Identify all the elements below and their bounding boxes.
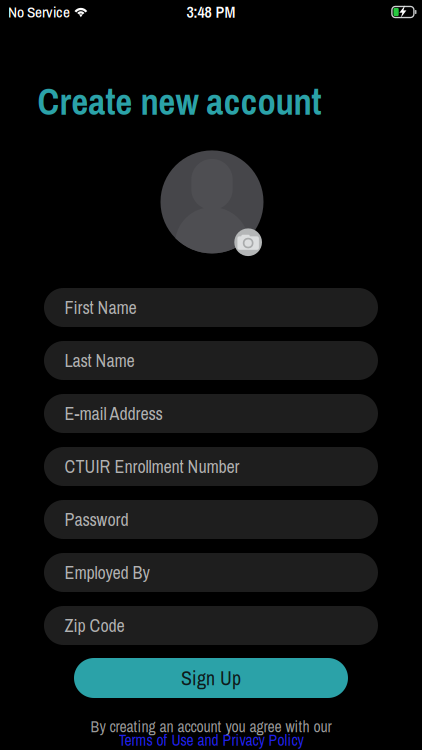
staticText: Password bbox=[64, 507, 128, 532]
staticText: CTUIR Enrollment Number bbox=[64, 454, 239, 479]
button[interactable]: CTUIR Enrollment Number bbox=[44, 447, 378, 486]
staticText: No Service bbox=[8, 2, 70, 22]
button[interactable]: Terms of Use and Privacy Policy bbox=[0, 730, 422, 750]
button[interactable]: Last Name bbox=[44, 341, 378, 380]
button[interactable]: Employed By bbox=[44, 553, 378, 592]
staticText: Sign Up bbox=[181, 664, 241, 691]
button[interactable]: E-mail Address bbox=[44, 394, 378, 433]
staticText: By creating an account you agree with ou… bbox=[90, 716, 331, 737]
staticText: Employed By bbox=[64, 560, 149, 585]
button[interactable]: Sign Up bbox=[74, 658, 348, 698]
staticText: 3:48 PM bbox=[186, 1, 235, 23]
staticText: E-mail Address bbox=[64, 401, 162, 426]
button[interactable]: Password bbox=[44, 500, 378, 539]
staticText: Last Name bbox=[64, 348, 134, 373]
staticText: Terms of Use and Privacy Policy bbox=[118, 730, 303, 750]
button[interactable]: Zip Code bbox=[44, 606, 378, 645]
staticText: First Name bbox=[64, 295, 136, 320]
staticText: Create new account bbox=[38, 77, 322, 126]
button[interactable]: First Name bbox=[44, 288, 378, 327]
staticText: Zip Code bbox=[64, 613, 124, 638]
